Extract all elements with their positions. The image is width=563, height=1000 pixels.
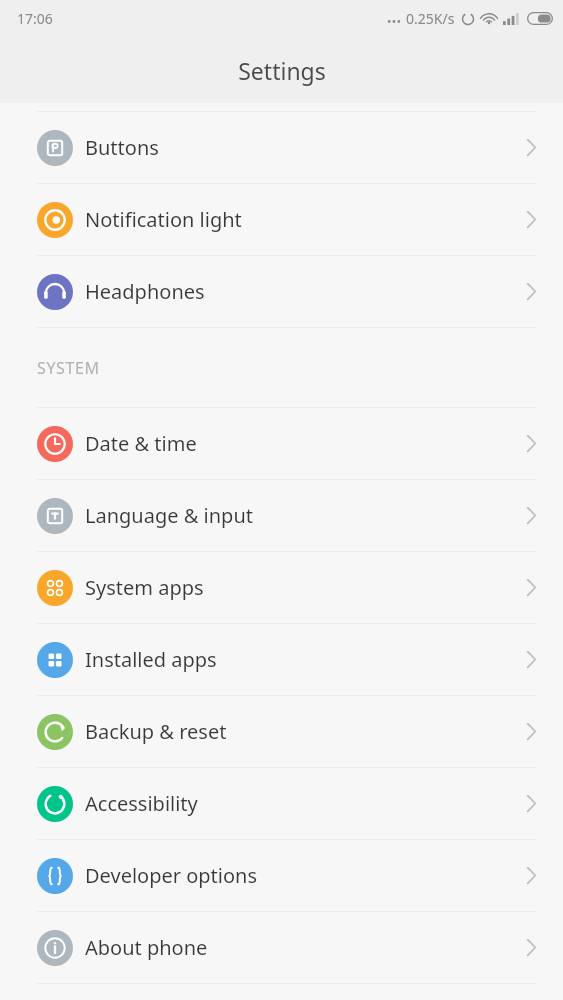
button[interactable]: Language & input xyxy=(0,480,563,551)
staticText: Notification light xyxy=(85,206,242,233)
button[interactable]: Accessibility xyxy=(0,768,563,839)
button[interactable]: System apps xyxy=(0,552,563,623)
staticText: Date & time xyxy=(85,430,197,457)
staticText: Settings xyxy=(238,55,326,86)
button[interactable]: Buttons xyxy=(0,112,563,183)
button[interactable]: Date & time xyxy=(0,408,563,479)
staticText: Buttons xyxy=(85,134,159,161)
button[interactable]: Developer options xyxy=(0,840,563,911)
button[interactable]: Headphones xyxy=(0,256,563,327)
staticText: Language & input xyxy=(85,502,253,529)
button[interactable]: About phone xyxy=(0,912,563,983)
staticText: Developer options xyxy=(85,862,258,889)
staticText: SYSTEM xyxy=(37,357,100,379)
staticText: Installed apps xyxy=(85,646,217,673)
button[interactable]: Backup & reset xyxy=(0,696,563,767)
staticText: 17:06 xyxy=(17,9,53,28)
staticText: Accessibility xyxy=(85,790,198,817)
staticText: Headphones xyxy=(85,278,205,305)
button[interactable]: Installed apps xyxy=(0,624,563,695)
staticText: 0.25K/s xyxy=(406,9,455,28)
staticText: System apps xyxy=(85,574,204,601)
button[interactable]: Notification light xyxy=(0,184,563,255)
staticText: Backup & reset xyxy=(85,718,227,745)
staticText: About phone xyxy=(85,934,208,961)
